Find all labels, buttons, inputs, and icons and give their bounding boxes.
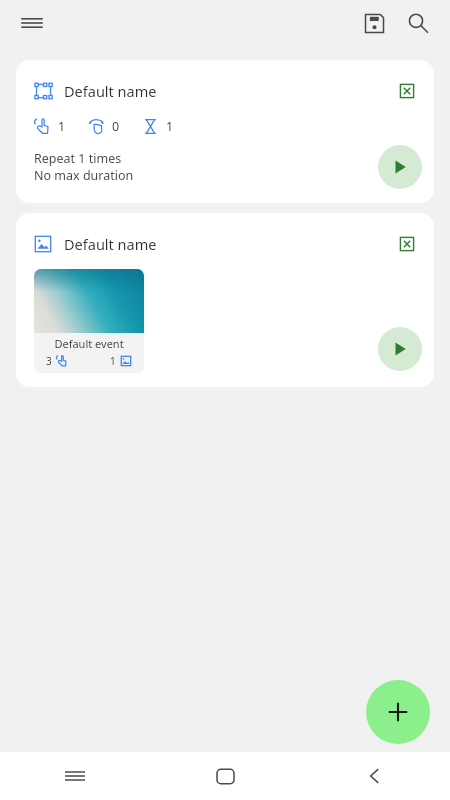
button[interactable]: Home <box>150 752 300 800</box>
button[interactable]: Delete <box>390 227 424 261</box>
staticText: Repeat 1 times <box>34 150 122 167</box>
staticText: Default event <box>54 336 124 351</box>
button[interactable]: Play <box>378 145 422 189</box>
button[interactable]: Search <box>396 1 440 45</box>
button[interactable]: Recents <box>0 752 150 800</box>
button[interactable]: Menu <box>12 3 52 43</box>
button[interactable]: Back <box>300 752 450 800</box>
staticText: Default name <box>64 81 157 101</box>
staticText: 0 <box>112 118 120 135</box>
button[interactable]: Play <box>378 327 422 371</box>
button[interactable]: Default name <box>16 213 434 387</box>
button[interactable]: Default name <box>16 60 434 203</box>
staticText: 1 <box>58 118 66 135</box>
staticText: No max duration <box>34 167 134 184</box>
staticText: 1 <box>110 354 116 368</box>
staticText: Default name <box>64 234 157 254</box>
button[interactable]: Default event <box>34 269 144 373</box>
button[interactable]: Delete <box>390 74 424 108</box>
staticText: 1 <box>166 118 174 135</box>
button[interactable]: Add <box>366 680 430 744</box>
staticText: 3 <box>46 354 52 368</box>
button[interactable]: Save <box>352 1 396 45</box>
